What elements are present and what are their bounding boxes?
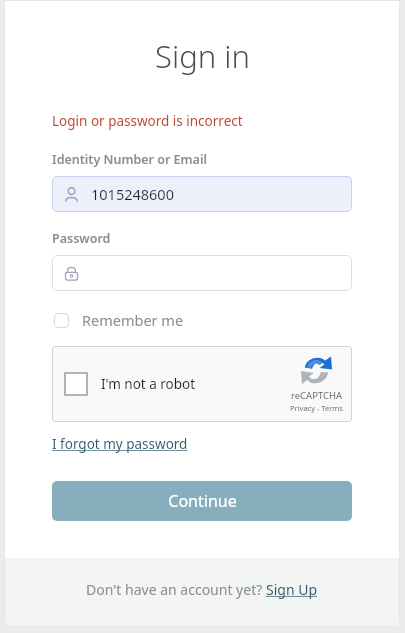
staticText: I'm not a robot [101, 375, 196, 393]
staticText: Sign in [155, 35, 250, 77]
staticText: Identity Number or Email [52, 151, 207, 168]
staticText: I forgot my password [52, 435, 188, 453]
staticText: Remember me [82, 310, 184, 330]
button[interactable]: Remember me [52, 306, 186, 334]
button[interactable]: Password [52, 255, 352, 291]
staticText: Login or password is incorrect [52, 112, 243, 130]
button[interactable]: User [52, 176, 352, 212]
staticText: Continue [168, 490, 237, 512]
staticText: reCAPTCHA [291, 389, 343, 402]
button[interactable]: I forgot my password [52, 435, 188, 453]
other: User [64, 187, 79, 202]
staticText: Password [52, 230, 111, 247]
button[interactable]: I'm not a robot [52, 372, 290, 396]
other: Password [64, 266, 79, 281]
button[interactable]: Continue [52, 481, 352, 521]
button[interactable]: Sign Up [266, 580, 318, 599]
staticText: Don't have an account yet? [86, 580, 266, 599]
staticText: 1015248600 [91, 184, 174, 204]
staticText: Privacy - Terms [290, 403, 343, 413]
staticText: Sign Up [266, 580, 318, 599]
